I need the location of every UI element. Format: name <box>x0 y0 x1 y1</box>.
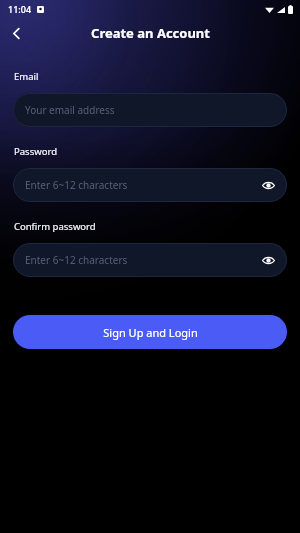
button[interactable]: Back <box>0 18 32 48</box>
staticText: Your email address <box>25 103 115 117</box>
staticText: Confirm password <box>14 220 96 233</box>
staticText: Password <box>14 145 57 158</box>
staticText: Sign Up and Login <box>103 325 198 340</box>
button[interactable]: Show password <box>257 174 279 196</box>
button[interactable]: Sign Up and Login <box>13 315 287 349</box>
button[interactable]: Enter 6~12 characters <box>13 243 287 277</box>
button[interactable]: Your email address <box>13 93 287 127</box>
staticText: 11:04 <box>8 3 32 15</box>
button[interactable]: Show confirm password <box>257 249 279 271</box>
staticText: Enter 6~12 characters <box>25 178 128 192</box>
staticText: Create an Account <box>91 24 210 42</box>
staticText: Email <box>14 70 39 83</box>
staticText: Enter 6~12 characters <box>25 253 128 267</box>
button[interactable]: Enter 6~12 characters <box>13 168 287 202</box>
